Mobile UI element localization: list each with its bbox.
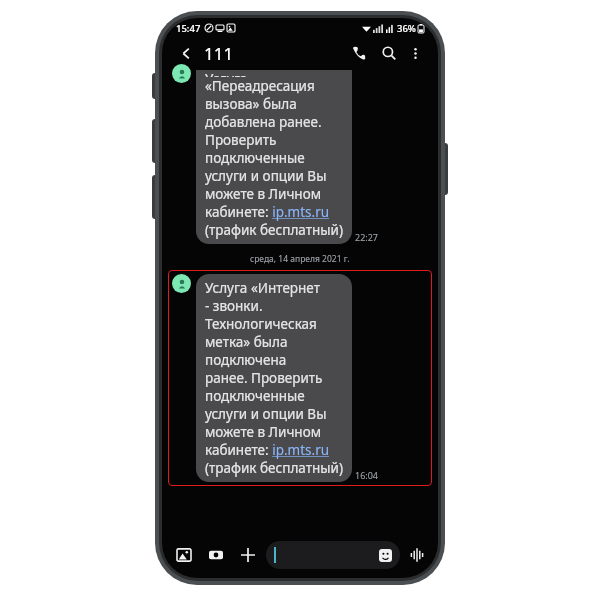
staticText: 22:27 xyxy=(355,231,379,243)
staticText: (трафик бесплатный) xyxy=(205,221,343,239)
staticText: кабинете: ip.mts.ru xyxy=(205,203,330,221)
button[interactable]: Call xyxy=(346,40,372,66)
staticText: метка» была xyxy=(205,333,288,351)
staticText: вызова» была xyxy=(205,95,297,113)
button[interactable]: Attach xyxy=(236,543,260,567)
staticText: среда, 14 апреля 2021 г. xyxy=(250,253,350,265)
staticText: можете в Личном xyxy=(205,185,322,203)
staticText: услуги и опции Вы xyxy=(205,167,327,185)
staticText: - звонки. xyxy=(205,297,263,315)
staticText: «Переадресация xyxy=(205,77,315,95)
button[interactable]: Back xyxy=(174,41,198,65)
staticText: подключена xyxy=(205,351,287,369)
button[interactable]: Camera xyxy=(204,543,228,567)
staticText: кабинете: ip.mts.ru xyxy=(205,441,330,459)
staticText: можете в Личном xyxy=(205,423,322,441)
button[interactable]: Voice message xyxy=(406,544,428,566)
staticText: 16:04 xyxy=(355,469,379,481)
staticText: Услуга «Интернет xyxy=(205,279,320,297)
staticText: услуги и опции Вы xyxy=(205,405,327,423)
staticText: Технологическая xyxy=(205,315,317,333)
staticText: подключенные xyxy=(205,149,305,167)
staticText: ранее. Проверить xyxy=(205,369,323,387)
button[interactable]: Услуга xyxy=(196,70,352,244)
button[interactable] xyxy=(266,541,400,569)
staticText: 111 xyxy=(204,42,234,65)
staticText: Услуга xyxy=(205,70,248,77)
staticText: (трафик бесплатный) xyxy=(205,459,343,477)
button[interactable]: Услуга «Интернет xyxy=(196,274,352,482)
button[interactable]: More options xyxy=(404,42,426,64)
staticText: подключенные xyxy=(205,387,305,405)
button[interactable]: Gallery xyxy=(172,543,196,567)
staticText: Проверить xyxy=(205,131,277,149)
staticText: 15:47 xyxy=(176,22,201,35)
button[interactable]: Search xyxy=(376,40,402,66)
staticText: добавлена ранее. xyxy=(205,113,322,131)
staticText: 36% xyxy=(397,22,416,35)
